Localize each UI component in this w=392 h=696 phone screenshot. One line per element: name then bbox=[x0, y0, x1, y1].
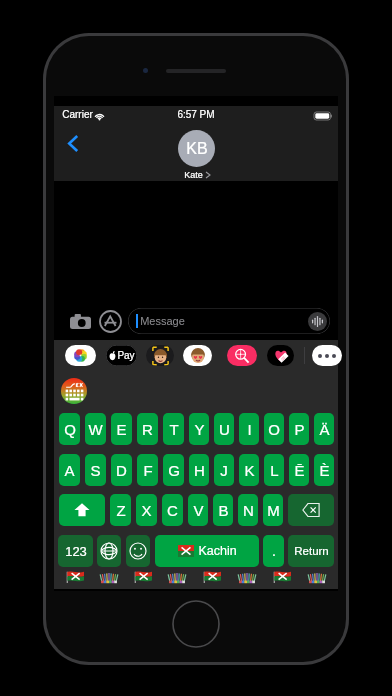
button[interactable]: Ē bbox=[289, 454, 309, 486]
button[interactable]: Memoji bbox=[146, 345, 174, 366]
staticText: S bbox=[90, 462, 101, 479]
staticText: W bbox=[88, 421, 103, 438]
staticText: F bbox=[143, 462, 153, 479]
staticText: L bbox=[270, 462, 279, 479]
staticText: J bbox=[220, 462, 228, 479]
button[interactable]: U bbox=[214, 413, 234, 445]
button[interactable]: A bbox=[59, 454, 80, 486]
staticText: 6:57 PM bbox=[177, 109, 215, 120]
button[interactable]: Return bbox=[288, 535, 334, 567]
button[interactable]: Crossed flags bbox=[229, 569, 264, 585]
button[interactable]: Message bbox=[128, 308, 330, 334]
button[interactable]: Kachin flag bbox=[58, 569, 92, 585]
button[interactable]: I bbox=[239, 413, 259, 445]
button[interactable]: Crossed flags bbox=[92, 569, 126, 585]
staticText: C bbox=[167, 502, 178, 519]
button[interactable]: F bbox=[137, 454, 158, 486]
staticText: Y bbox=[194, 421, 205, 438]
staticText: Kate bbox=[184, 170, 203, 180]
button[interactable]: W bbox=[85, 413, 106, 445]
button[interactable]: Emoji bbox=[126, 535, 150, 567]
button[interactable]: Kachin flag bbox=[264, 569, 299, 585]
staticText: . bbox=[272, 543, 276, 559]
staticText: U bbox=[219, 421, 230, 438]
staticText: Carrier bbox=[62, 109, 93, 120]
button[interactable]: Camera bbox=[68, 309, 92, 333]
staticText: Kachin bbox=[198, 544, 237, 558]
staticText: I bbox=[247, 421, 252, 438]
button[interactable]: Back bbox=[60, 130, 86, 156]
button[interactable]: Digital Touch bbox=[267, 345, 294, 366]
button[interactable]: S bbox=[85, 454, 106, 486]
staticText: Pay bbox=[117, 350, 135, 361]
staticText: E bbox=[116, 421, 127, 438]
button[interactable]: J bbox=[214, 454, 234, 486]
staticText: KB bbox=[186, 140, 208, 158]
button[interactable]: Next keyboard bbox=[97, 535, 121, 567]
staticText: A bbox=[64, 462, 75, 479]
button[interactable]: D bbox=[111, 454, 132, 486]
button[interactable]: More apps bbox=[312, 345, 342, 366]
button[interactable]: Kachin bbox=[155, 535, 259, 567]
button[interactable]: Backspace bbox=[288, 494, 334, 526]
button[interactable]: Photos bbox=[65, 345, 96, 366]
button[interactable]: V bbox=[188, 494, 208, 526]
staticText: Q bbox=[64, 421, 76, 438]
button[interactable]: T bbox=[163, 413, 184, 445]
staticText: B bbox=[218, 502, 229, 519]
staticText: H bbox=[194, 462, 205, 479]
staticText: V bbox=[193, 502, 204, 519]
staticText: D bbox=[116, 462, 127, 479]
staticText: M bbox=[267, 502, 280, 519]
staticText: P bbox=[294, 421, 305, 438]
button[interactable]: Crossed flags bbox=[299, 569, 334, 585]
staticText: O bbox=[268, 421, 280, 438]
button[interactable]: M bbox=[263, 494, 283, 526]
staticText: Message bbox=[140, 315, 185, 327]
button[interactable]: Apple Pay bbox=[106, 345, 137, 366]
staticText: N bbox=[243, 502, 254, 519]
staticText: Ä bbox=[319, 421, 330, 438]
button[interactable]: Kachin flag bbox=[126, 569, 160, 585]
staticText: Z bbox=[116, 502, 126, 519]
button[interactable]: O bbox=[264, 413, 284, 445]
button[interactable]: App Store bbox=[98, 309, 122, 333]
button[interactable]: . bbox=[263, 535, 284, 567]
staticText: T bbox=[169, 421, 179, 438]
button[interactable]: G bbox=[163, 454, 184, 486]
button[interactable]: Q bbox=[59, 413, 80, 445]
staticText: G bbox=[168, 462, 180, 479]
button[interactable]: È bbox=[314, 454, 334, 486]
button[interactable]: Crossed flags bbox=[160, 569, 194, 585]
button[interactable]: P bbox=[289, 413, 309, 445]
button[interactable]: Kachin flag bbox=[194, 569, 229, 585]
button[interactable]: C bbox=[162, 494, 183, 526]
button[interactable]: Shift bbox=[59, 494, 105, 526]
button[interactable]: B bbox=[213, 494, 233, 526]
button[interactable]: K bbox=[239, 454, 259, 486]
button[interactable]: E bbox=[111, 413, 132, 445]
staticText: È bbox=[319, 462, 330, 479]
staticText: 123 bbox=[65, 544, 87, 559]
staticText: X bbox=[141, 502, 152, 519]
staticText: K bbox=[244, 462, 255, 479]
staticText: Ē bbox=[294, 462, 305, 479]
button[interactable]: Audio message bbox=[308, 312, 327, 331]
button[interactable]: 123 bbox=[58, 535, 93, 567]
button[interactable]: Memoji 2 bbox=[183, 345, 212, 366]
staticText: R bbox=[142, 421, 153, 438]
button[interactable]: Y bbox=[189, 413, 209, 445]
button[interactable]: L bbox=[264, 454, 284, 486]
button[interactable]: KB bbox=[178, 130, 215, 180]
button[interactable]: H bbox=[189, 454, 209, 486]
button[interactable]: Z bbox=[110, 494, 131, 526]
button[interactable]: N bbox=[238, 494, 258, 526]
button[interactable]: R bbox=[137, 413, 158, 445]
staticText: Return bbox=[294, 545, 329, 558]
button[interactable]: Ä bbox=[314, 413, 334, 445]
button[interactable]: Images bbox=[227, 345, 257, 366]
button[interactable]: X bbox=[136, 494, 157, 526]
button[interactable]: Kachin keyboard bbox=[61, 378, 87, 404]
